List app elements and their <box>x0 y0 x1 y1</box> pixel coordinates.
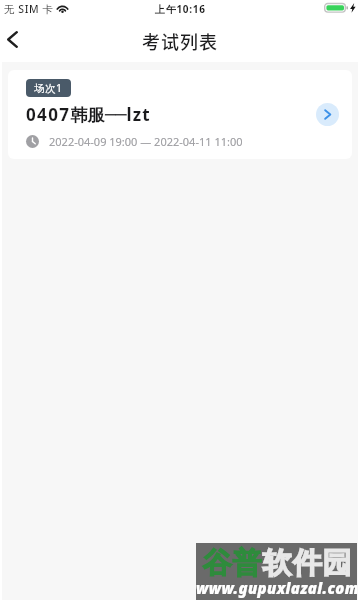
button[interactable]: 场次1 <box>8 70 352 159</box>
staticText: 2022-04-09 19:00 — 2022-04-11 11:00 <box>49 134 243 149</box>
staticText: 软件园 <box>262 545 352 582</box>
staticText: www.gupuxlazal.com <box>196 578 357 598</box>
button[interactable]: Open exam detail <box>316 103 339 126</box>
staticText: 谷普 <box>202 545 262 582</box>
staticText: 考试列表 <box>142 28 218 54</box>
button[interactable]: Back <box>0 20 40 62</box>
staticText: 0407韩服──lzt <box>26 103 151 126</box>
staticText: 无 SIM 卡 <box>4 2 54 16</box>
staticText: 场次1 <box>34 81 63 95</box>
staticText: 上午10:16 <box>155 2 206 16</box>
